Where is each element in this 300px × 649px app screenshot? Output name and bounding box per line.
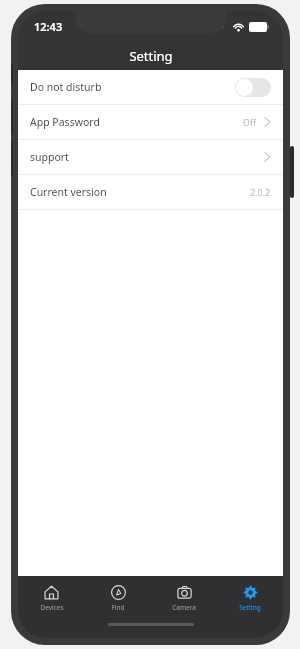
staticText: Devices [40, 603, 64, 612]
button[interactable]: support [18, 140, 283, 174]
button[interactable]: Do not disturb toggle [235, 78, 271, 97]
staticText: Do not disturb [30, 80, 102, 94]
staticText: Find [111, 603, 125, 612]
button[interactable]: Find [85, 576, 151, 620]
staticText: Off [243, 116, 257, 128]
button[interactable]: Setting [217, 576, 283, 620]
staticText: 12:43 [34, 19, 63, 34]
staticText: Setting [239, 603, 261, 612]
button[interactable]: Do not disturb [18, 70, 283, 104]
staticText: App Password [30, 115, 100, 129]
button[interactable]: Devices [18, 576, 85, 620]
staticText: support [30, 150, 69, 164]
staticText: Current version [30, 185, 107, 199]
staticText: Camera [172, 603, 196, 612]
button[interactable]: App Password [18, 105, 283, 139]
staticText: 2.0.2 [250, 186, 271, 198]
staticText: Setting [129, 47, 173, 65]
button[interactable]: Current version [18, 175, 283, 209]
button[interactable]: Camera [151, 576, 217, 620]
